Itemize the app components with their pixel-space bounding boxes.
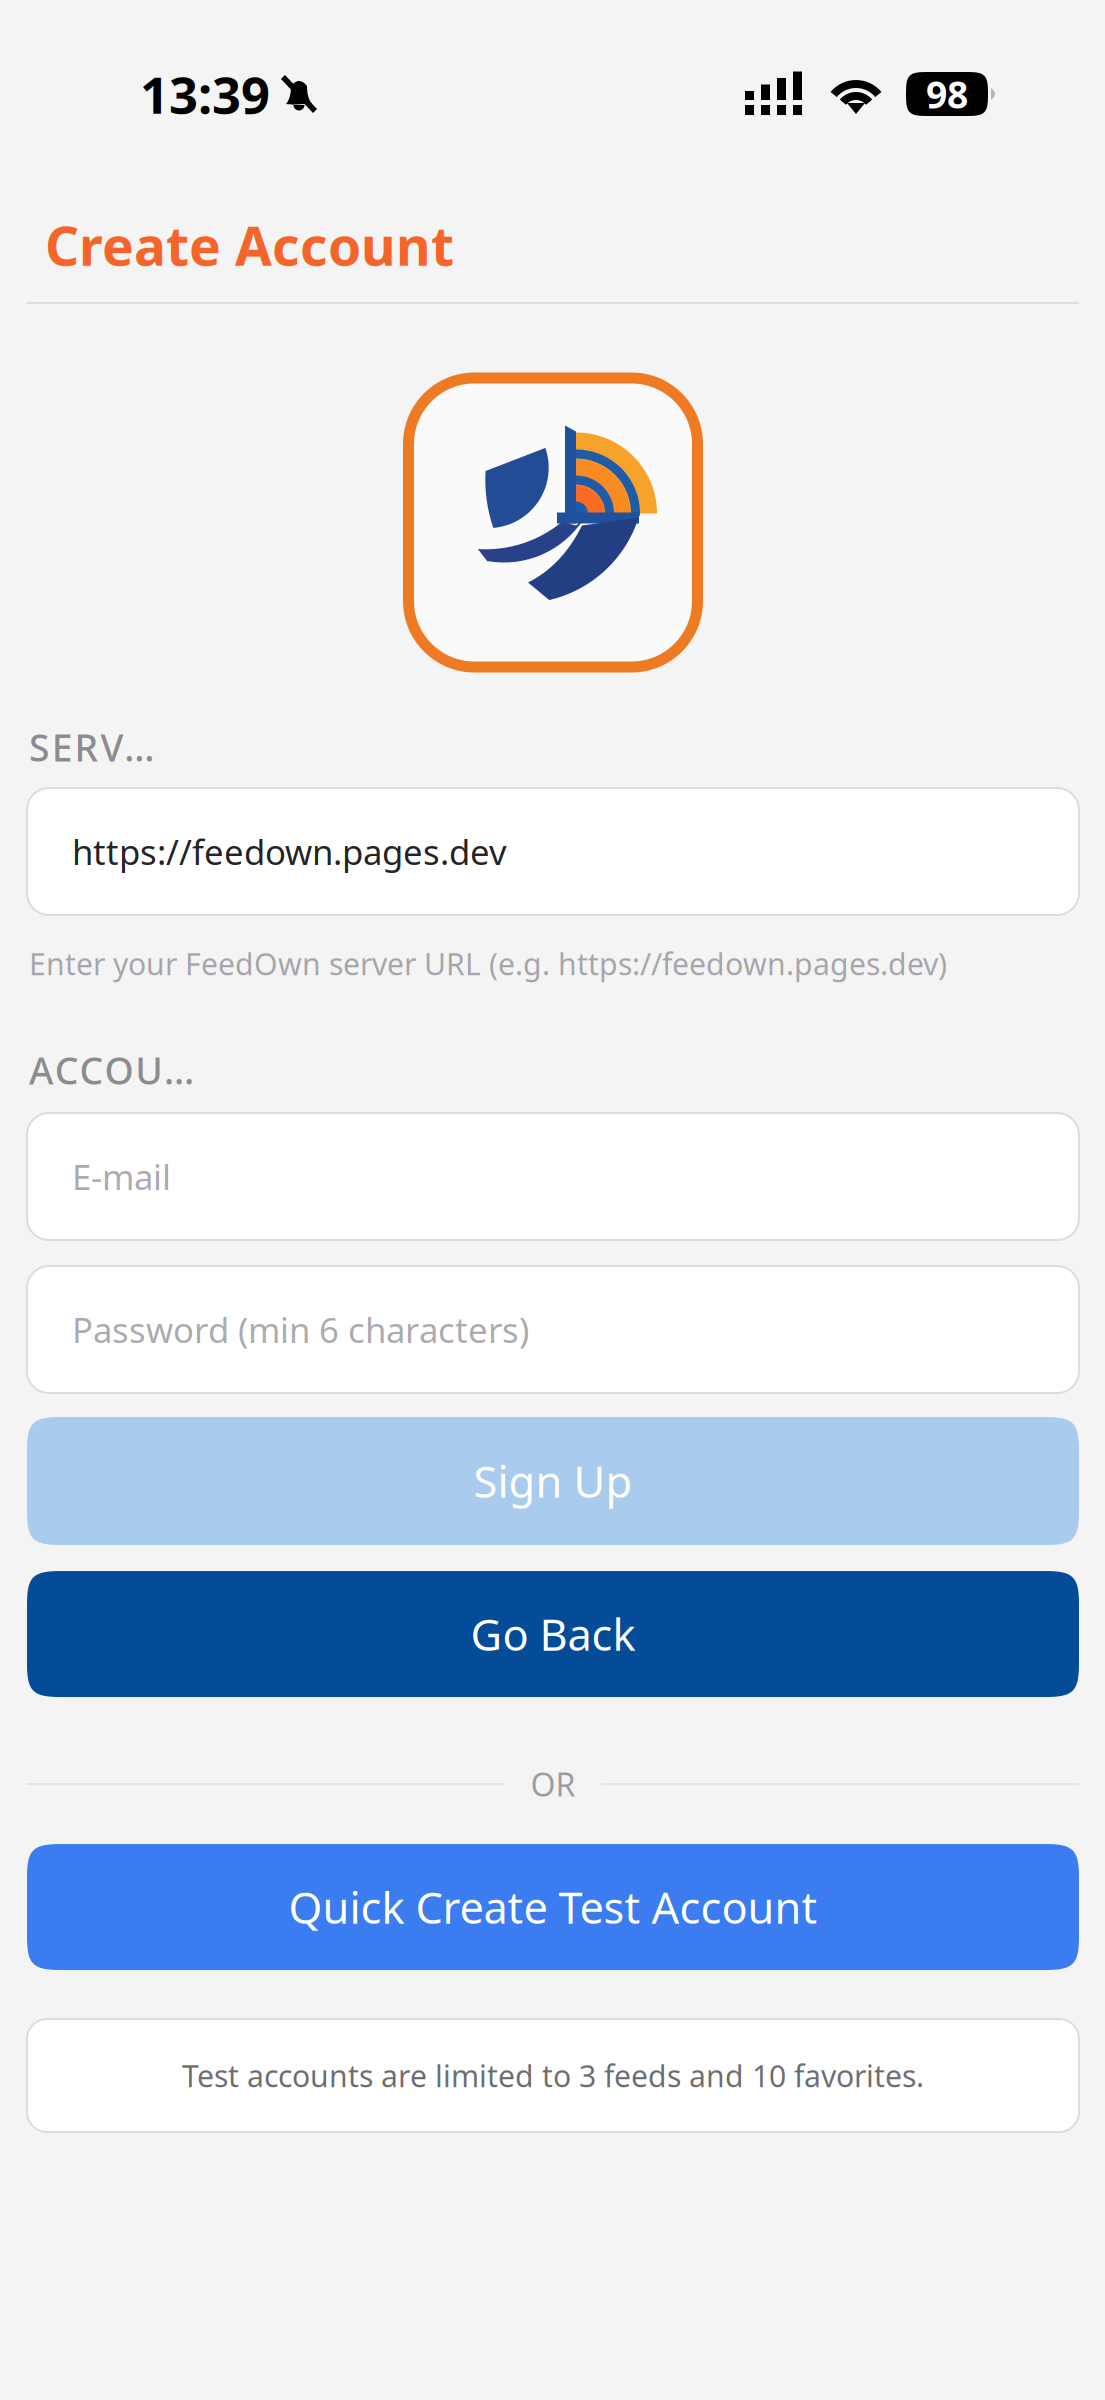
staticText: Password (min 6 characters) (72, 1306, 529, 1353)
staticText: Test accounts are limited to 3 feeds and… (182, 2055, 924, 2096)
staticText: E-mail (72, 1153, 171, 1200)
staticText: Quick Create Test Account (288, 1877, 817, 1936)
button[interactable]: Go Back (27, 1571, 1079, 1697)
staticText: 98 (926, 69, 968, 119)
staticText: https://feedown.pages.dev (72, 828, 507, 875)
staticText: OR (530, 1762, 575, 1806)
staticText: 13:39 (140, 59, 270, 128)
button[interactable]: Quick Create Test Account (27, 1844, 1079, 1970)
staticText: Create Account (45, 209, 454, 281)
staticText: Sign Up (473, 1451, 632, 1510)
staticText: Enter your FeedOwn server URL (e.g. http… (29, 943, 947, 984)
staticText: SERVER (29, 722, 170, 772)
staticText: Go Back (470, 1604, 635, 1663)
button[interactable]: Sign Up (27, 1417, 1079, 1545)
staticText: ACCOUNT (29, 1045, 215, 1095)
